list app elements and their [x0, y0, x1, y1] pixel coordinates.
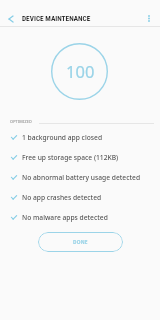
staticText: No app crashes detected: [22, 193, 102, 202]
button[interactable]: 1 background app closed: [0, 127, 160, 147]
button[interactable]: More options: [137, 9, 160, 28]
staticText: 1 background app closed: [22, 133, 103, 142]
staticText: DONE: [73, 239, 88, 246]
staticText: No abnormal battery usage detected: [22, 173, 141, 182]
staticText: DEVICE MAINTENANCE: [22, 14, 91, 23]
staticText: Free up storage space (112KB): [22, 153, 119, 162]
button[interactable]: No malware apps detected: [0, 207, 160, 227]
button[interactable]: Back: [0, 9, 22, 28]
staticText: No malware apps detected: [22, 213, 108, 222]
button[interactable]: No abnormal battery usage detected: [0, 167, 160, 187]
button[interactable]: Free up storage space (112KB): [0, 147, 160, 167]
staticText: OPTIMIZED: [10, 119, 33, 124]
button[interactable]: DONE: [38, 232, 123, 252]
staticText: 100: [66, 60, 95, 82]
button[interactable]: No app crashes detected: [0, 187, 160, 207]
